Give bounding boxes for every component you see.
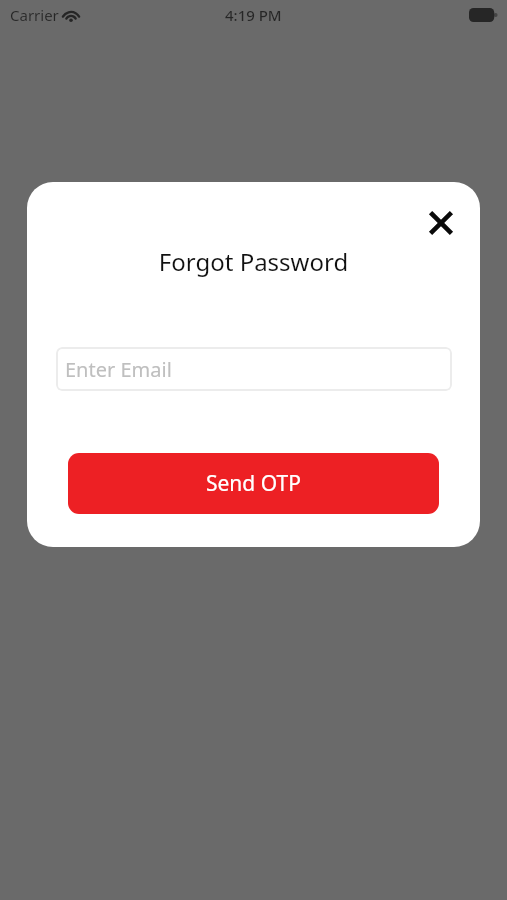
staticText: Carrier	[10, 5, 59, 25]
staticText: Enter Email	[65, 356, 172, 383]
staticText: Send OTP	[206, 469, 301, 498]
button[interactable]: Close	[424, 206, 458, 240]
button[interactable]: Enter Email	[56, 347, 452, 391]
button[interactable]: Send OTP	[68, 453, 439, 514]
staticText: 4:19 PM	[225, 5, 282, 25]
staticText: Forgot Password	[27, 245, 480, 278]
